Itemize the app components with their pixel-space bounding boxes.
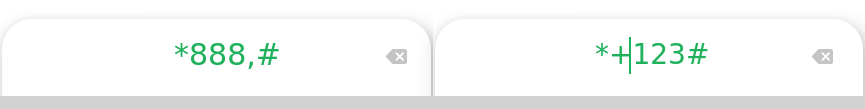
staticText: *888,# [174,37,281,72]
button[interactable]: *+123# [555,0,795,109]
button[interactable]: *888,# [134,0,374,109]
button[interactable]: Backspace [372,32,420,80]
button[interactable]: Backspace [798,32,846,80]
staticText: *+123# [595,38,710,71]
